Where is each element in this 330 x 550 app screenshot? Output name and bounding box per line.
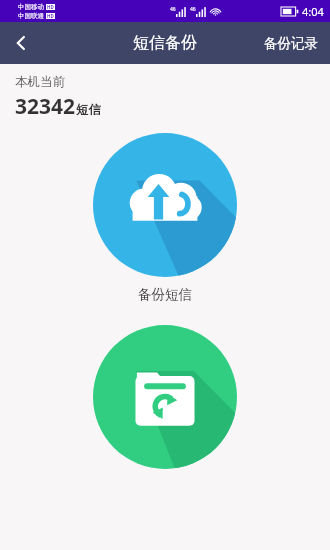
staticText: 46 xyxy=(190,6,196,13)
button[interactable]: 备份短信 xyxy=(93,133,237,277)
staticText: 短信备份 xyxy=(133,33,197,53)
staticText: 短信 xyxy=(76,102,101,118)
staticText: 中国移动 xyxy=(18,3,44,11)
staticText: 中国联通 xyxy=(18,12,44,20)
staticText: HD xyxy=(47,13,54,19)
staticText: 备份短信 xyxy=(138,286,192,303)
staticText: 32342 xyxy=(15,92,76,121)
staticText: 46 xyxy=(170,6,176,13)
staticText: HD xyxy=(47,4,54,10)
staticText: 本机当前 xyxy=(15,74,65,90)
button[interactable]: 备份记录 xyxy=(252,25,330,62)
button[interactable]: 恢复短信 xyxy=(93,325,237,469)
button[interactable]: 返回 xyxy=(0,22,42,64)
staticText: 4:04 xyxy=(302,4,324,19)
staticText: 备份记录 xyxy=(264,35,318,52)
